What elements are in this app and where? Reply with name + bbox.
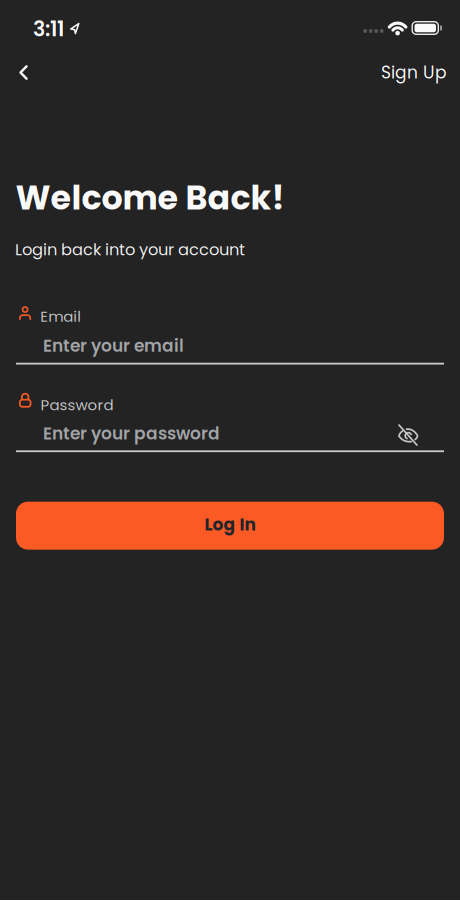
- staticText: Enter your password: [43, 421, 220, 445]
- staticText: Login back into your account: [15, 238, 245, 261]
- staticText: Password: [40, 394, 113, 415]
- button[interactable]: Enter your password: [0, 421, 460, 452]
- button[interactable]: Sign Up: [381, 61, 447, 84]
- staticText: Sign Up: [381, 61, 447, 84]
- staticText: Enter your email: [43, 334, 184, 358]
- button[interactable]: [19, 57, 36, 88]
- button[interactable]: Log In: [16, 502, 444, 550]
- button[interactable]: Enter your email: [0, 334, 460, 364]
- staticText: 3:11: [33, 15, 64, 43]
- staticText: Log In: [204, 513, 255, 536]
- staticText: Email: [40, 306, 81, 327]
- button[interactable]: [398, 423, 418, 444]
- staticText: Welcome Back!: [15, 174, 284, 221]
